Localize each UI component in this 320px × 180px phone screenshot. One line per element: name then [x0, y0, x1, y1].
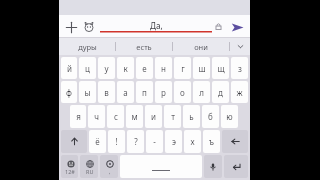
staticText: о — [180, 87, 185, 98]
staticText: ц — [85, 63, 90, 74]
button[interactable]: ч — [88, 105, 105, 128]
staticText: м — [131, 111, 138, 122]
staticText: х — [190, 136, 195, 147]
button[interactable]: ф — [61, 81, 77, 103]
staticText: дуры — [78, 42, 97, 52]
button[interactable]: п — [136, 81, 153, 103]
button[interactable]: н — [155, 57, 172, 79]
button[interactable]: ё — [89, 130, 106, 153]
button[interactable]: л — [193, 81, 210, 103]
staticText: ж — [236, 87, 243, 98]
staticText: т — [171, 111, 175, 122]
staticText: ы — [84, 87, 91, 98]
button[interactable]: Shift — [61, 130, 87, 153]
button[interactable]: Settings — [100, 155, 118, 178]
staticText: к — [123, 63, 128, 74]
staticText: я — [76, 111, 81, 122]
button[interactable]: дуры — [59, 38, 115, 55]
button[interactable]: и — [145, 105, 162, 128]
staticText: г — [181, 63, 185, 74]
button[interactable]: Change language — [80, 155, 98, 178]
button[interactable]: Send — [228, 18, 246, 36]
button[interactable]: More suggestions — [230, 38, 250, 55]
staticText: у — [104, 63, 109, 74]
button[interactable]: г — [174, 57, 191, 79]
staticText: д — [218, 87, 223, 98]
staticText: RU — [86, 168, 94, 175]
staticText: а — [123, 87, 128, 98]
button[interactable]: в — [98, 81, 115, 103]
staticText: ъ — [209, 136, 214, 147]
button[interactable]: Voice input — [204, 155, 222, 178]
button[interactable]: у — [98, 57, 115, 79]
button[interactable]: щ — [212, 57, 229, 79]
button[interactable]: Secret chat — [212, 20, 225, 33]
button[interactable]: ы — [79, 81, 96, 103]
staticText: они — [194, 42, 208, 52]
button[interactable]: я — [70, 105, 86, 128]
button[interactable]: э — [165, 130, 182, 153]
staticText: л — [199, 87, 204, 98]
staticText: ? — [134, 136, 138, 147]
staticText: э — [172, 136, 176, 147]
button[interactable]: т — [164, 105, 181, 128]
button[interactable]: б — [202, 105, 219, 128]
staticText: ф — [66, 87, 72, 98]
staticText: п — [142, 87, 147, 98]
button[interactable]: д — [212, 81, 229, 103]
staticText: ч — [94, 111, 99, 122]
button[interactable]: Stickers — [82, 20, 96, 34]
staticText: р — [161, 87, 166, 98]
button[interactable]: они — [173, 38, 229, 55]
staticText: н — [161, 63, 166, 74]
button[interactable]: о — [174, 81, 191, 103]
button[interactable]: Emoji and symbols — [61, 155, 78, 178]
button[interactable]: ш — [193, 57, 210, 79]
button[interactable]: е — [136, 57, 153, 79]
staticText: 12# — [65, 168, 75, 175]
staticText: з — [238, 63, 242, 74]
button[interactable]: ? — [127, 130, 144, 153]
staticText: и — [151, 111, 156, 122]
button[interactable]: Enter — [224, 155, 248, 178]
staticText: ё — [95, 136, 100, 147]
button[interactable]: й — [61, 57, 77, 79]
button[interactable]: ю — [221, 105, 238, 128]
button[interactable]: есть — [116, 38, 172, 55]
button[interactable]: ц — [79, 57, 96, 79]
staticText: ь — [189, 111, 194, 122]
staticText: с — [114, 111, 118, 122]
button[interactable]: Backspace — [222, 130, 248, 153]
staticText: ю — [226, 111, 233, 122]
staticText: е — [142, 63, 147, 74]
staticText: й — [67, 63, 72, 74]
button[interactable]: к — [117, 57, 134, 79]
button[interactable]: х — [184, 130, 201, 153]
staticText: ! — [115, 136, 118, 147]
staticText: - — [153, 136, 156, 147]
button[interactable]: р — [155, 81, 172, 103]
button[interactable]: Attach — [63, 19, 79, 35]
button[interactable]: ъ — [203, 130, 220, 153]
button[interactable]: Space — [120, 155, 202, 178]
button[interactable]: ж — [231, 81, 248, 103]
button[interactable]: - — [146, 130, 163, 153]
button[interactable]: ь — [183, 105, 200, 128]
staticText: в — [104, 87, 109, 98]
button[interactable]: з — [231, 57, 248, 79]
staticText: б — [208, 111, 213, 122]
staticText: ш — [198, 63, 206, 74]
staticText: , — [109, 168, 111, 175]
button[interactable]: м — [126, 105, 143, 128]
staticText: есть — [136, 42, 152, 52]
staticText: Да, — [150, 20, 163, 31]
button[interactable]: ! — [108, 130, 125, 153]
button[interactable]: а — [117, 81, 134, 103]
staticText: щ — [217, 63, 225, 74]
button[interactable]: с — [107, 105, 124, 128]
